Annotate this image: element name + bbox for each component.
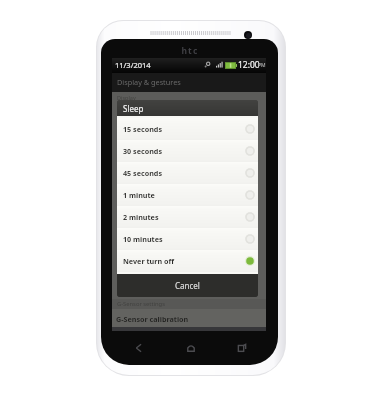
staticText: Display <box>117 94 136 101</box>
staticText: 15 seconds <box>123 124 163 134</box>
staticText: 45 seconds <box>123 168 163 178</box>
button[interactable]: 45 seconds <box>117 162 258 184</box>
staticText: 11/3/2014 <box>115 60 151 70</box>
staticText: Display & gestures <box>117 77 181 87</box>
button[interactable]: Recent apps <box>235 341 249 355</box>
button[interactable]: 15 seconds <box>117 118 258 140</box>
button[interactable]: Back <box>131 341 145 355</box>
button[interactable]: Never turn off <box>117 250 258 272</box>
staticText: 12:00 <box>238 59 260 71</box>
button[interactable]: Cancel <box>117 274 258 297</box>
staticText: 30 seconds <box>123 146 163 156</box>
staticText: Never turn off <box>123 256 175 266</box>
staticText: htc <box>174 45 206 57</box>
staticText: Cancel <box>175 280 200 291</box>
button[interactable]: Home <box>184 341 198 355</box>
button[interactable]: G-Sensor calibration <box>112 309 266 327</box>
staticText: G-Sensor settings <box>117 300 165 308</box>
button[interactable]: 2 minutes <box>117 206 258 228</box>
staticText: Sleep <box>123 103 144 114</box>
button[interactable]: 10 minutes <box>117 228 258 250</box>
staticText: G-Sensor calibration <box>116 314 189 324</box>
staticText: PM <box>258 62 266 69</box>
button[interactable]: 30 seconds <box>117 140 258 162</box>
staticText: 10 minutes <box>123 234 163 244</box>
button[interactable]: 1 minute <box>117 184 258 206</box>
staticText: 2 minutes <box>123 212 159 222</box>
staticText: 1 minute <box>123 190 155 200</box>
